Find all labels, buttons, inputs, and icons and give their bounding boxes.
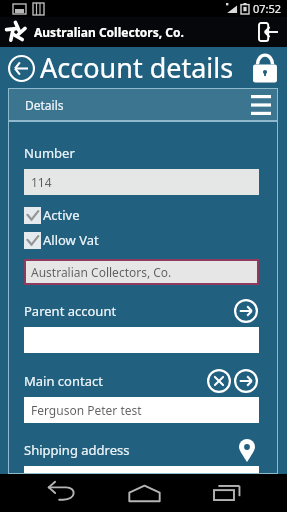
button[interactable]: Map location xyxy=(235,438,259,462)
staticText: Allow Vat xyxy=(43,231,99,249)
button[interactable]: Australian Collectors, Co. xyxy=(24,259,259,285)
button[interactable]: Back xyxy=(39,474,83,512)
button[interactable]: Home xyxy=(122,474,166,512)
staticText: 07:52 xyxy=(253,1,282,16)
button[interactable]: Allow Vat xyxy=(24,231,99,249)
staticText: Account details xyxy=(40,49,234,86)
staticText: Australian Collectors, Co. xyxy=(31,264,172,280)
staticText: Australian Collectors, Co. xyxy=(34,24,184,40)
button[interactable]: 114 xyxy=(24,169,259,195)
button[interactable]: Back xyxy=(6,53,36,83)
staticText: Active xyxy=(43,206,80,224)
button[interactable]: Open xyxy=(233,368,259,394)
button[interactable]: Active xyxy=(24,206,80,224)
button[interactable] xyxy=(24,466,259,474)
button[interactable]: Lock xyxy=(249,52,281,84)
button[interactable]: Details xyxy=(8,88,278,121)
button[interactable]: Ferguson Peter test xyxy=(24,397,259,423)
staticText: 114 xyxy=(31,174,52,190)
button[interactable]: Log out xyxy=(249,17,287,47)
staticText: Shipping address xyxy=(24,441,130,459)
button[interactable]: Recent apps xyxy=(204,474,248,512)
staticText: Parent account xyxy=(24,302,117,320)
button[interactable]: Menu xyxy=(248,92,274,118)
staticText: Main contact xyxy=(24,372,103,390)
button[interactable]: Clear xyxy=(206,368,232,394)
button[interactable]: Open xyxy=(233,298,259,324)
staticText: Number xyxy=(24,144,75,162)
staticText: Details xyxy=(25,97,64,113)
staticText: Ferguson Peter test xyxy=(31,402,142,418)
